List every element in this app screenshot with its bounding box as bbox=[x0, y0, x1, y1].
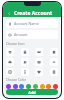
button[interactable]: Icon 8 bbox=[6, 68, 14, 76]
button[interactable]: Icon 1 bbox=[21, 48, 29, 56]
button[interactable]: Icon 9 bbox=[21, 68, 29, 76]
staticText: Amount bbox=[14, 32, 28, 37]
staticText: Choose Icon bbox=[6, 42, 25, 46]
button[interactable]: Color 6 bbox=[46, 84, 51, 89]
button[interactable]: Icon 0 bbox=[6, 48, 14, 56]
button[interactable]: Back bbox=[6, 10, 12, 16]
button[interactable]: Account Name bbox=[6, 19, 58, 28]
button[interactable]: Icon 11 bbox=[50, 68, 58, 76]
button[interactable]: Icon 10 bbox=[35, 68, 43, 76]
button[interactable]: Icon 2 bbox=[35, 48, 43, 56]
staticText: Create Account bbox=[14, 10, 53, 17]
button[interactable]: Color 7 bbox=[53, 84, 58, 89]
button[interactable]: Icon 6 bbox=[35, 58, 43, 66]
staticText: Choose Color bbox=[6, 78, 27, 82]
button[interactable]: Icon 4 bbox=[6, 58, 14, 66]
button[interactable]: Color 4 bbox=[33, 84, 38, 89]
button[interactable]: Icon 7 bbox=[50, 58, 58, 66]
button[interactable]: Color 3 bbox=[26, 84, 31, 89]
button[interactable]: Color 0 bbox=[6, 84, 11, 89]
button[interactable]: Amount bbox=[6, 30, 58, 39]
button[interactable]: Color 5 bbox=[40, 84, 45, 89]
staticText: Add bbox=[28, 90, 36, 95]
staticText: Account Name bbox=[14, 21, 39, 26]
button[interactable]: Icon 5 bbox=[21, 58, 29, 66]
button[interactable]: Icon 3 bbox=[50, 48, 58, 56]
button[interactable]: Color 2 bbox=[19, 84, 24, 89]
button[interactable]: Color 1 bbox=[13, 84, 18, 89]
button[interactable]: Add bbox=[6, 89, 58, 95]
